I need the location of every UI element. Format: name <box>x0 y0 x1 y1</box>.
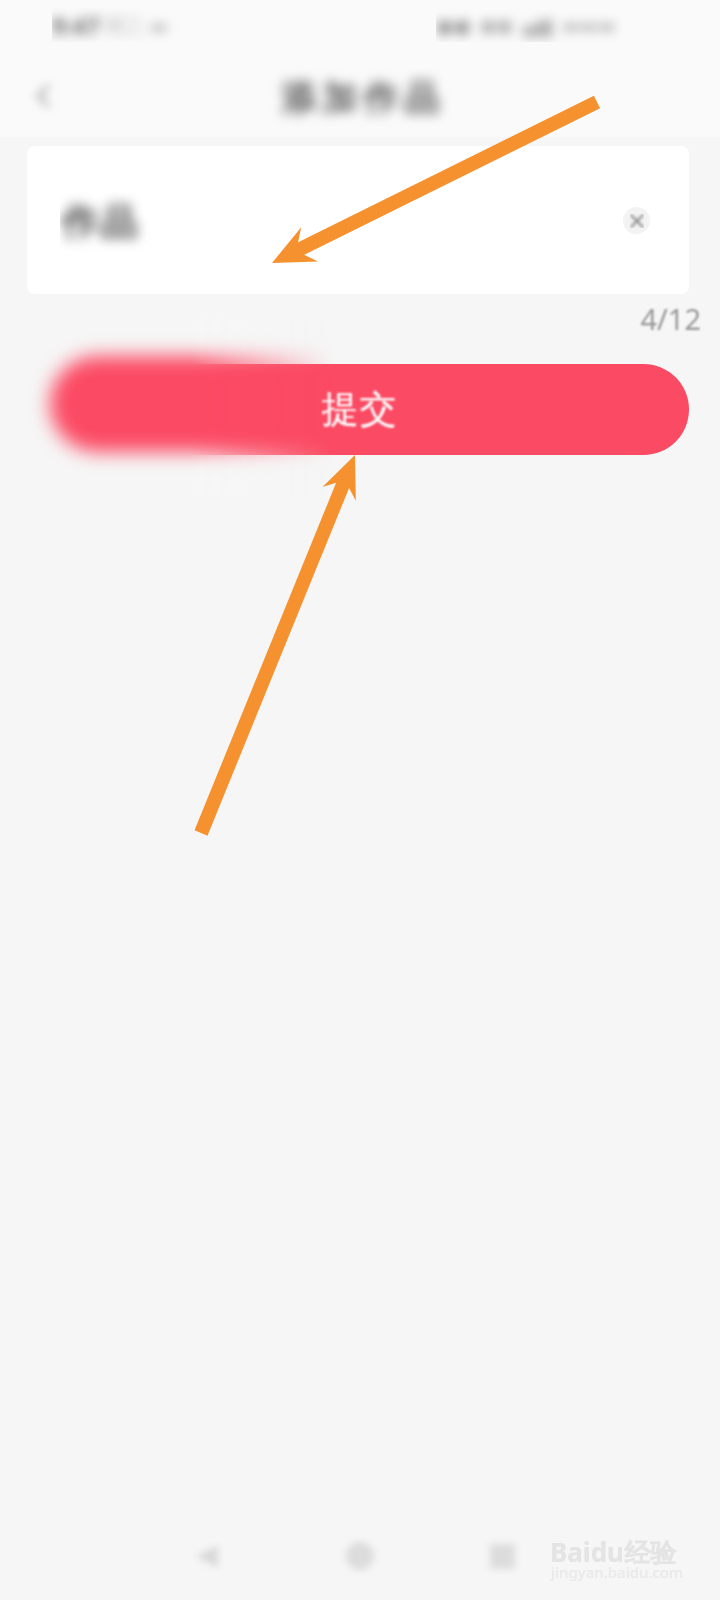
staticText: 提交 <box>321 386 397 433</box>
staticText: jingyan.baidu.com <box>551 1562 684 1582</box>
staticText: ●● <box>436 14 471 37</box>
staticText: 周三 ▬ <box>104 12 169 39</box>
button[interactable]: 提交 <box>28 364 689 455</box>
staticText: ●● ▄▆ ▬▬▬ <box>480 12 616 38</box>
button[interactable]: Home <box>325 1521 395 1591</box>
staticText: 4/12 <box>0 299 701 338</box>
staticText: 添加作品 <box>278 76 442 120</box>
button[interactable]: 作品 <box>27 146 689 294</box>
button[interactable]: Back <box>172 1521 242 1591</box>
button[interactable]: Recents <box>467 1521 537 1591</box>
button[interactable]: Clear <box>623 207 650 234</box>
button[interactable]: Back <box>8 61 78 131</box>
staticText: Baidu经验 <box>550 1534 676 1570</box>
staticText: 作品 <box>60 199 138 246</box>
staticText: 9:47 <box>52 9 100 42</box>
